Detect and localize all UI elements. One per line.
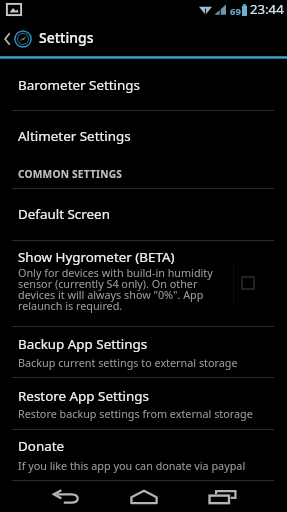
staticText: If you like this app you can donate via … (18, 458, 280, 473)
staticText: Settings (39, 28, 94, 47)
button[interactable]: Donate (0, 430, 287, 481)
staticText: Barometer Settings (18, 76, 141, 94)
button[interactable]: Home (111, 481, 177, 512)
staticText: Restore backup settings from external st… (18, 406, 280, 421)
staticText: 69 (230, 5, 241, 18)
button[interactable]: Altimeter Settings (0, 111, 287, 163)
button[interactable]: Navigate up (0, 21, 35, 56)
button[interactable]: Barometer Settings (0, 59, 287, 111)
staticText: COMMON SETTINGS (18, 167, 123, 181)
staticText: Only for devices with build-in humidity … (18, 265, 225, 313)
staticText: Restore App Settings (18, 387, 149, 405)
button[interactable]: Back (33, 481, 99, 512)
staticText: Backup App Settings (18, 335, 148, 353)
staticText: Altimeter Settings (18, 127, 131, 145)
staticText: 23:44 (250, 0, 284, 18)
staticText: Default Screen (18, 205, 110, 223)
button[interactable]: Restore App Settings (0, 378, 287, 430)
staticText: Donate (18, 437, 65, 455)
button[interactable]: Backup App Settings (0, 327, 287, 378)
button[interactable]: Show Hygrometer toggle (241, 276, 255, 290)
staticText: Show Hygrometer (BETA) (18, 248, 175, 266)
staticText: Backup current settings to external stor… (18, 355, 280, 370)
button[interactable]: Recent apps (189, 481, 255, 512)
button[interactable]: Default Screen (0, 189, 287, 241)
button[interactable]: Show Hygrometer (BETA) (0, 241, 287, 327)
